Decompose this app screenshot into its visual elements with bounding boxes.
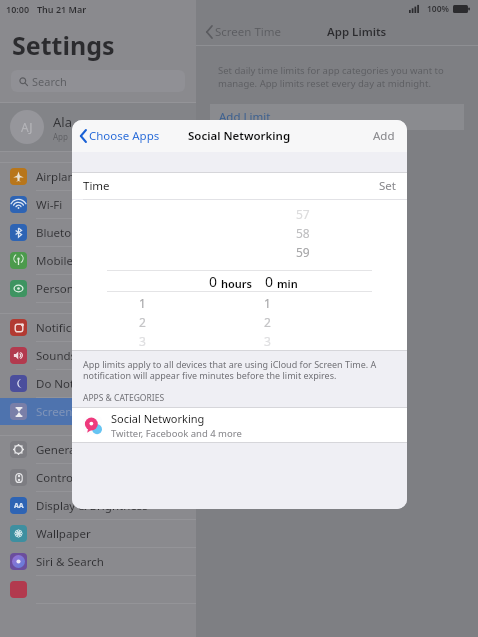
staticText: 0: [209, 272, 218, 291]
staticText: Social Networking: [111, 411, 205, 426]
staticText: Wi-Fi: [36, 197, 63, 213]
staticText: Screen Time: [215, 24, 282, 40]
staticText: Do Not Disturb: [36, 376, 118, 392]
staticText: Set daily time limits for app categories…: [218, 64, 456, 90]
staticText: AA: [14, 501, 24, 511]
staticText: 2: [264, 314, 271, 330]
button[interactable]: Mobile: [0, 247, 196, 274]
staticText: min: [277, 276, 298, 291]
staticText: Choose Apps: [89, 128, 160, 144]
staticText: Settings: [12, 28, 115, 62]
staticText: Bluetooth: [36, 225, 90, 241]
staticText: Thu 21 Mar: [37, 3, 87, 15]
staticText: 59: [296, 244, 310, 260]
staticText: AJ: [21, 119, 33, 135]
staticText: 1: [139, 295, 146, 311]
button[interactable]: Airplane: [0, 163, 196, 190]
button[interactable]: Siri & Search: [0, 548, 196, 575]
staticText: Wallpaper: [36, 526, 91, 542]
staticText: 57: [296, 206, 310, 222]
staticText: Control Centre: [36, 470, 115, 486]
button[interactable]: Social Networking: [72, 408, 407, 442]
button[interactable]: Choose Apps: [80, 128, 160, 144]
button[interactable]: Personal: [0, 275, 196, 302]
staticText: 2: [139, 314, 146, 330]
staticText: 3: [139, 333, 146, 349]
staticText: App: [53, 131, 68, 142]
staticText: hours: [221, 276, 253, 291]
staticText: 0: [265, 272, 274, 291]
button[interactable]: Add Limit: [210, 104, 464, 130]
staticText: 3: [264, 333, 271, 349]
staticText: App Limits: [327, 24, 387, 40]
button[interactable]: Control Centre: [0, 464, 196, 491]
staticText: Display & Brightness: [36, 498, 148, 514]
staticText: Ala: [53, 113, 72, 131]
staticText: Mobile: [36, 253, 73, 269]
staticText: Time: [83, 178, 110, 194]
staticText: Social Networking: [188, 128, 291, 144]
button[interactable]: Add: [373, 128, 395, 144]
staticText: Personal: [36, 281, 84, 297]
staticText: General: [36, 442, 79, 458]
button[interactable]: AJ: [0, 103, 196, 151]
button[interactable]: Time: [72, 173, 407, 199]
staticText: APPS & CATEGORIES: [83, 392, 165, 404]
staticText: 58: [296, 225, 310, 241]
staticText: Screen Time: [36, 404, 103, 420]
staticText: Add: [373, 128, 395, 144]
button[interactable]: Screen Time: [206, 24, 282, 40]
staticText: Notifications: [36, 320, 105, 336]
staticText: Sounds: [36, 348, 77, 364]
staticText: 1: [264, 295, 271, 311]
staticText: Siri & Search: [36, 554, 104, 570]
button[interactable]: [0, 576, 196, 603]
button[interactable]: Sounds: [0, 342, 196, 369]
button[interactable]: AA: [0, 492, 196, 519]
staticText: 100%: [427, 3, 450, 15]
staticText: Add Limit: [219, 109, 271, 125]
button[interactable]: Screen Time: [0, 398, 196, 425]
staticText: Twitter, Facebook and 4 more: [111, 427, 242, 440]
button[interactable]: Notifications: [0, 314, 196, 341]
button[interactable]: General: [0, 436, 196, 463]
button[interactable]: Wallpaper: [0, 520, 196, 547]
staticText: Search: [32, 74, 67, 89]
staticText: Airplane: [36, 169, 82, 185]
staticText: Set: [379, 178, 396, 194]
staticText: 10:00: [6, 3, 30, 15]
button[interactable]: Bluetooth: [0, 219, 196, 246]
button[interactable]: Search: [11, 70, 185, 92]
staticText: App limits apply to all devices that are…: [83, 358, 396, 382]
button[interactable]: Wi-Fi: [0, 191, 196, 218]
button[interactable]: Do Not Disturb: [0, 370, 196, 397]
